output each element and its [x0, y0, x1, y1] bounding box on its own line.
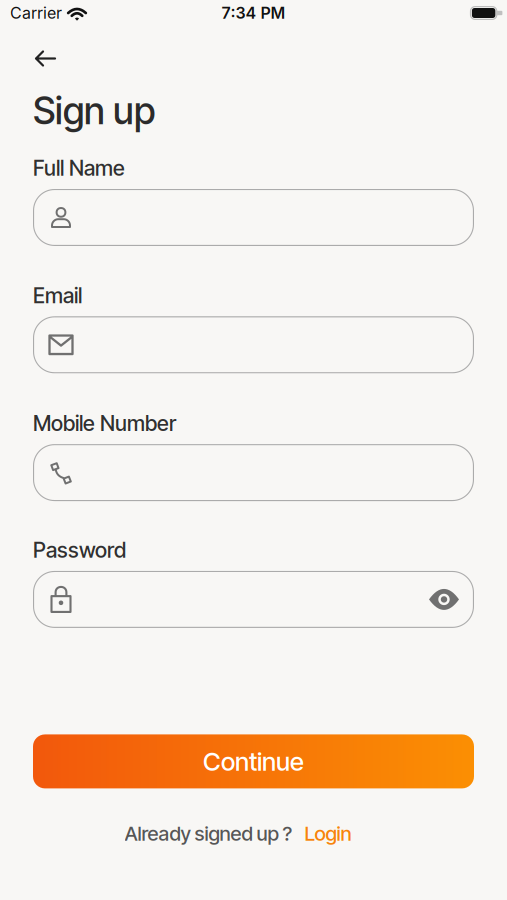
button[interactable]: Mobile Number	[33, 444, 474, 501]
staticText: Mobile Number	[33, 410, 176, 436]
button[interactable]: Password	[33, 571, 474, 628]
staticText: Already signed up ?	[124, 821, 292, 846]
button[interactable]: Email	[33, 316, 474, 373]
staticText: Full Name	[33, 155, 125, 181]
staticText: Email	[33, 282, 82, 308]
staticText: Continue	[203, 746, 304, 777]
staticText: Password	[33, 537, 126, 563]
button[interactable]: Show password	[429, 588, 459, 610]
staticText: 7:34 PM	[221, 3, 285, 23]
staticText: Sign up	[33, 88, 155, 133]
button[interactable]: Login	[304, 821, 351, 846]
button[interactable]: Back	[0, 28, 55, 66]
button[interactable]: Full Name	[33, 189, 474, 246]
button[interactable]: Continue	[33, 734, 474, 788]
staticText: Carrier	[10, 3, 62, 23]
staticText: Login	[304, 821, 351, 846]
